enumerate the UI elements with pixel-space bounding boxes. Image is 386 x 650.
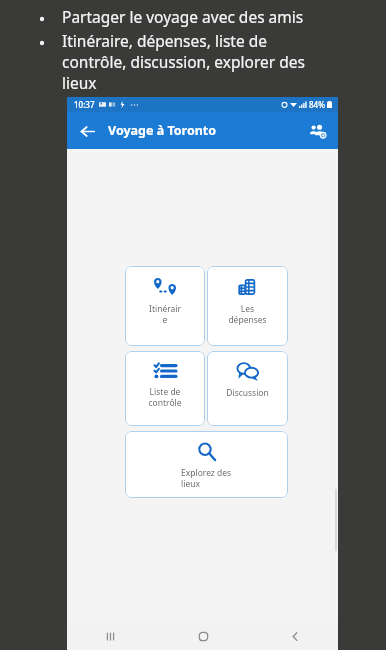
staticText: 10:37 bbox=[74, 99, 95, 110]
button[interactable]: Recent apps bbox=[95, 623, 125, 650]
staticText: Liste de contrôle bbox=[133, 386, 197, 408]
button[interactable]: Back bbox=[280, 623, 310, 650]
button[interactable]: Discussion bbox=[207, 351, 288, 426]
button[interactable]: Les dépenses bbox=[207, 266, 288, 346]
staticText: Itinérair e bbox=[133, 303, 197, 325]
staticText: Itinéraire, dépenses, liste de bbox=[62, 30, 267, 51]
staticText: Voyage à Toronto bbox=[108, 122, 217, 139]
staticText: Discussion bbox=[215, 387, 280, 399]
staticText: Explorez des lieux bbox=[181, 467, 232, 489]
button[interactable]: Liste de contrôle bbox=[125, 351, 205, 426]
staticText: contrôle, discussion, explorer des bbox=[62, 51, 305, 72]
staticText: lieux bbox=[62, 72, 97, 93]
button[interactable]: Back bbox=[73, 117, 101, 145]
staticText: Les dépenses bbox=[215, 303, 280, 325]
button[interactable]: Home bbox=[188, 623, 218, 650]
button[interactable]: Explorez des lieux bbox=[125, 431, 288, 498]
staticText: 84% bbox=[309, 99, 325, 110]
staticText: Partager le voyage avec des amis bbox=[62, 6, 304, 27]
button[interactable]: Itinérair e bbox=[125, 266, 205, 346]
button[interactable]: Add people bbox=[302, 116, 332, 146]
